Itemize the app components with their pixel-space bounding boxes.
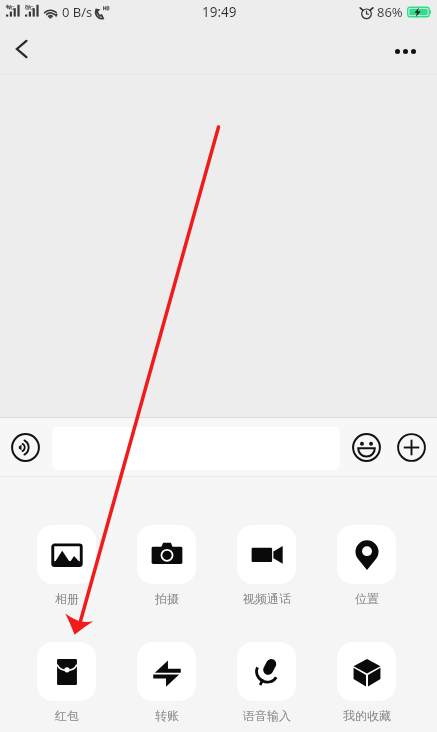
staticText: 0 B/s bbox=[62, 3, 93, 21]
button[interactable]: Emoji bbox=[351, 432, 381, 462]
button[interactable]: 位置 bbox=[337, 525, 396, 606]
staticText: 视频通话 bbox=[243, 591, 291, 606]
button[interactable]: Back bbox=[0, 28, 43, 74]
button[interactable]: 视频通话 bbox=[237, 525, 296, 606]
button[interactable]: More options bbox=[373, 28, 437, 74]
staticText: 转账 bbox=[155, 708, 179, 723]
button[interactable]: 转账 bbox=[137, 642, 196, 723]
button[interactable]: 拍摄 bbox=[137, 525, 196, 606]
staticText: 我的收藏 bbox=[343, 708, 391, 723]
staticText: 红包 bbox=[55, 708, 79, 723]
staticText: 2G bbox=[26, 4, 34, 12]
staticText: 相册 bbox=[55, 591, 79, 606]
staticText: 86% bbox=[377, 3, 403, 21]
staticText: 4G bbox=[7, 4, 15, 12]
button[interactable]: 红包 bbox=[37, 642, 96, 723]
button[interactable]: Voice input bbox=[11, 433, 40, 462]
button[interactable]: 语音输入 bbox=[237, 642, 296, 723]
staticText: 19:49 bbox=[202, 3, 237, 21]
button[interactable]: 我的收藏 bbox=[337, 642, 396, 723]
button[interactable]: More bbox=[396, 432, 426, 462]
button[interactable] bbox=[52, 427, 340, 470]
staticText: 拍摄 bbox=[155, 591, 179, 606]
button[interactable]: 相册 bbox=[37, 525, 96, 606]
staticText: 位置 bbox=[355, 591, 379, 606]
staticText: 语音输入 bbox=[243, 708, 291, 723]
